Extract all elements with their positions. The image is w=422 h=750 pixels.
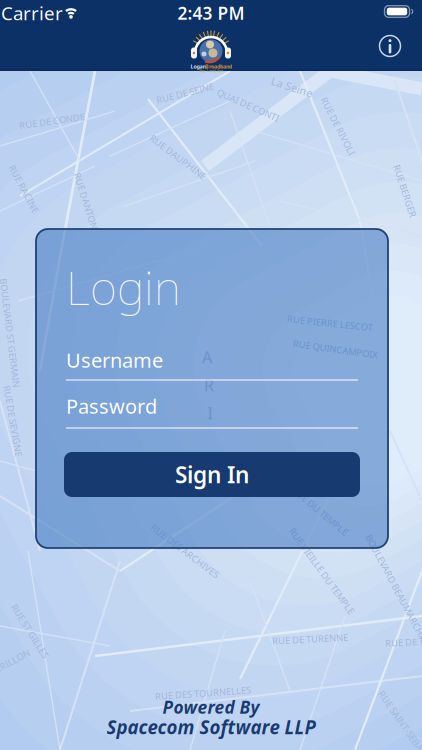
staticText: RUE DES TOURNELLES (155, 687, 251, 699)
staticText: RUE DE TU (385, 636, 422, 648)
staticText: RUE PIERRE LESCOT (287, 317, 373, 329)
button[interactable]: Password (66, 389, 358, 431)
staticText: BOULEVARD ST GERMAIN (0, 327, 65, 339)
staticText: Powered By (162, 695, 259, 718)
staticText: RUE QUINCAMPOIX (292, 343, 377, 355)
staticText: Login (66, 256, 181, 318)
staticText: A (202, 346, 212, 368)
staticText: Sky, Land, Sea (199, 68, 223, 73)
staticText: Carrier (1, 1, 63, 25)
staticText: RUE DE SEVIGNE (0, 415, 49, 427)
staticText: RUE RACINE (0, 183, 50, 195)
staticText: I (207, 402, 212, 424)
staticText: RUE DE RIVOLI (306, 120, 370, 132)
button[interactable]: Sign In (64, 452, 360, 497)
staticText: Sign In (175, 459, 249, 489)
staticText: QUAI DE CONTI (214, 99, 281, 111)
staticText: RUE DAUPHINE (144, 151, 212, 163)
staticText: 2:43 PM (177, 1, 244, 24)
staticText: Spacecom Software LLP (106, 715, 315, 739)
staticText: RUE SAINT-SEBASTIEN (360, 725, 422, 737)
staticText: Logan (190, 63, 205, 70)
button[interactable]: Info (377, 33, 402, 58)
staticText: RUE DE SEINE (155, 87, 214, 99)
button[interactable]: Username (66, 343, 358, 383)
staticText: Broadband (205, 63, 232, 70)
staticText: RUE DE TURENNE (272, 633, 348, 645)
staticText: CRILLON (0, 655, 31, 667)
staticText: RUE ST GILLES (0, 625, 61, 637)
staticText: Password (66, 393, 157, 419)
staticText: BOULEVARD BEAUMARCHAIS (334, 585, 422, 597)
staticText: RUE DE CONDE (19, 115, 85, 127)
staticText: RUE DANTON (56, 195, 115, 207)
staticText: RUE VIEILLE DU TEMPLE (270, 565, 374, 577)
staticText: Username (66, 347, 163, 373)
staticText: La Seine (270, 80, 313, 94)
staticText: RUE DU TEMPLE (285, 505, 355, 517)
staticText: RUE DES ARCHIVES (143, 545, 226, 557)
staticText: R (204, 374, 214, 396)
staticText: RUE BERGER (377, 185, 422, 197)
